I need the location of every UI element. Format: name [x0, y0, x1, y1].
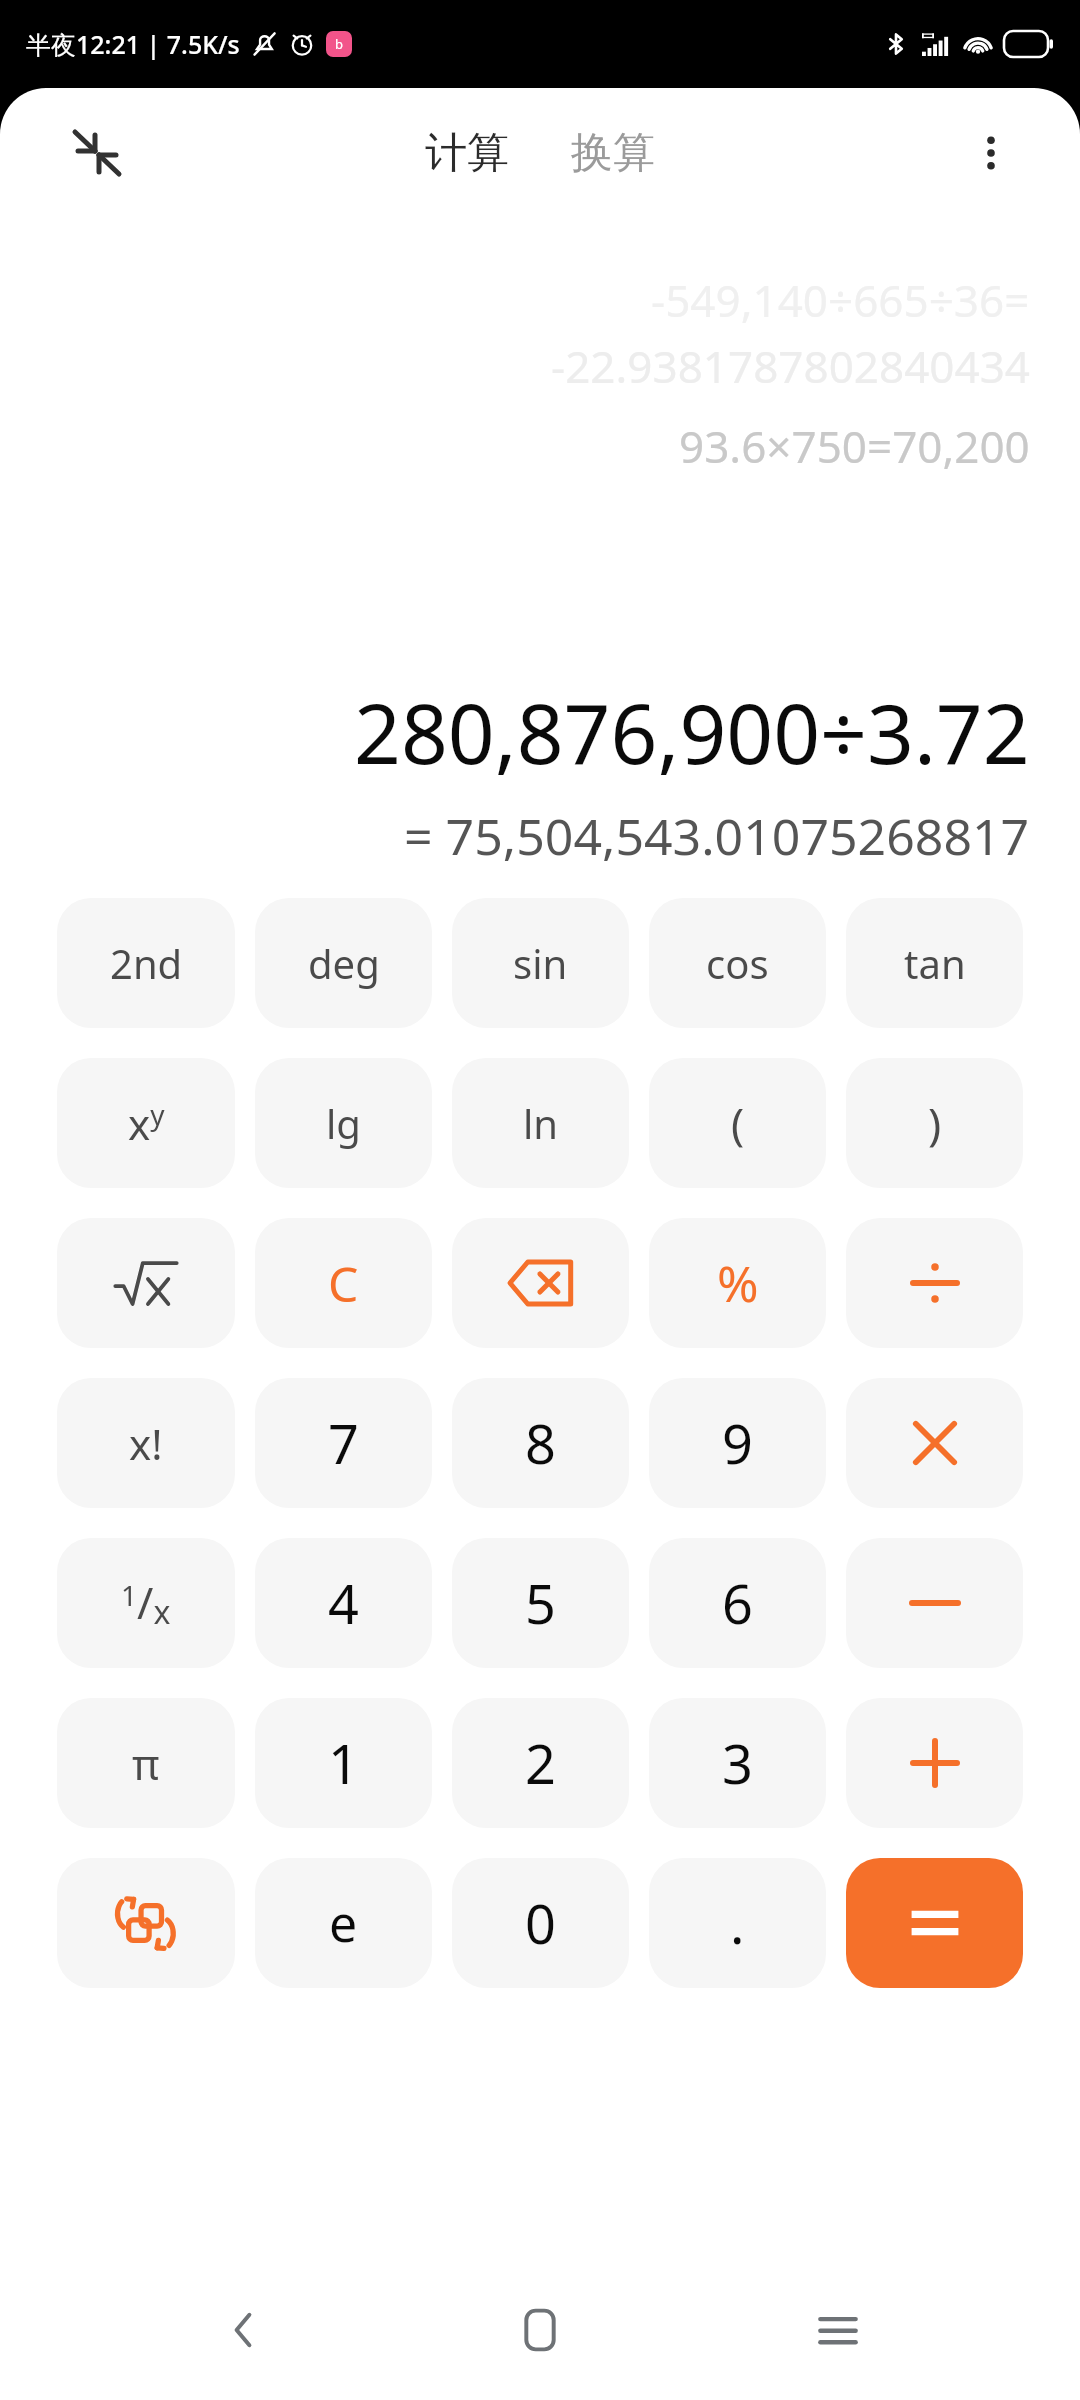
button[interactable]: . — [649, 1858, 826, 1988]
button[interactable]: 换算 — [561, 119, 665, 188]
button[interactable]: 9 — [649, 1378, 826, 1508]
staticText: -549,140÷665÷36= — [651, 270, 1030, 330]
button[interactable]: C — [255, 1218, 432, 1348]
staticText: 8 — [525, 1406, 556, 1480]
button[interactable]: 5 — [452, 1538, 629, 1668]
button[interactable]: 2 — [452, 1698, 629, 1828]
staticText: e — [329, 1889, 358, 1957]
staticText: 1/x — [121, 1572, 171, 1634]
staticText: deg — [308, 936, 380, 990]
staticText: 280,876,900÷3.72 — [354, 676, 1030, 788]
button[interactable]: ln — [452, 1058, 629, 1188]
button[interactable]: Power — [57, 1058, 235, 1188]
button[interactable]: Collapse — [60, 116, 134, 190]
button[interactable]: 1 — [255, 1698, 432, 1828]
button[interactable]: 8 — [452, 1378, 629, 1508]
button[interactable]: cos — [649, 898, 826, 1028]
button[interactable]: π — [57, 1698, 235, 1828]
button[interactable]: More options — [954, 116, 1028, 190]
staticText: 1 — [328, 1726, 359, 1800]
staticText: % — [717, 1249, 759, 1317]
button[interactable]: x! — [57, 1378, 235, 1508]
staticText: ( — [731, 1093, 745, 1153]
staticText: C — [328, 1251, 359, 1316]
staticText: 计算 — [425, 127, 509, 180]
button[interactable]: 7 — [255, 1378, 432, 1508]
staticText: π — [132, 1735, 160, 1792]
button[interactable]: Recent apps — [783, 2275, 893, 2385]
button[interactable]: 计算 — [415, 119, 519, 188]
button[interactable]: Square root — [57, 1218, 235, 1348]
button[interactable]: ) — [846, 1058, 1023, 1188]
button[interactable]: sin — [452, 898, 629, 1028]
button[interactable]: deg — [255, 898, 432, 1028]
staticText: 4 — [328, 1566, 359, 1640]
button[interactable]: 4 — [255, 1538, 432, 1668]
button[interactable]: Reciprocal — [57, 1538, 235, 1668]
staticText: x! — [129, 1415, 163, 1472]
staticText: 5 — [525, 1566, 556, 1640]
staticText: 6 — [722, 1566, 753, 1640]
button[interactable]: tan — [846, 898, 1023, 1028]
staticText: tan — [904, 936, 966, 990]
button[interactable]: % — [649, 1218, 826, 1348]
button[interactable]: Backspace — [452, 1218, 629, 1348]
staticText: 换算 — [571, 127, 655, 180]
staticText: ) — [928, 1093, 942, 1153]
button[interactable]: ( — [649, 1058, 826, 1188]
staticText: 2nd — [110, 936, 183, 990]
staticText: 9 — [722, 1406, 753, 1480]
button[interactable]: 0 — [452, 1858, 629, 1988]
button[interactable]: 6 — [649, 1538, 826, 1668]
button[interactable]: Home — [485, 2275, 595, 2385]
staticText: 3 — [722, 1726, 753, 1800]
staticText: sin — [513, 936, 568, 990]
button[interactable]: 2nd — [57, 898, 235, 1028]
button[interactable]: lg — [255, 1058, 432, 1188]
button[interactable]: Subtract — [846, 1538, 1023, 1668]
staticText: cos — [706, 936, 769, 990]
button[interactable]: 3 — [649, 1698, 826, 1828]
staticText: -22.9381787802840434 — [551, 336, 1030, 396]
button[interactable]: Swap — [57, 1858, 235, 1988]
staticText: = 75,504,543.01075268817 — [404, 802, 1030, 870]
button[interactable]: Multiply — [846, 1378, 1023, 1508]
button[interactable]: Equals — [846, 1858, 1023, 1988]
staticText: 半夜12:21 | 7.5K/s — [26, 27, 240, 61]
staticText: lg — [326, 1096, 361, 1150]
staticText: 93.6×750=70,200 — [679, 416, 1030, 476]
button[interactable]: Back — [188, 2275, 298, 2385]
button[interactable]: Divide — [846, 1218, 1023, 1348]
staticText: xy — [128, 1095, 165, 1152]
staticText: 0 — [525, 1886, 556, 1960]
staticText: 7 — [328, 1406, 359, 1480]
staticText: 2 — [525, 1726, 556, 1800]
staticText: b — [335, 35, 343, 53]
button[interactable]: e — [255, 1858, 432, 1988]
button[interactable]: Add — [846, 1698, 1023, 1828]
staticText: . — [730, 1886, 745, 1960]
staticText: ln — [523, 1096, 559, 1150]
